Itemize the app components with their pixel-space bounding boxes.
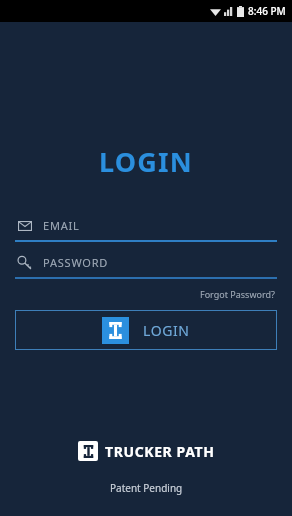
button[interactable]: PASSWORD <box>15 253 277 279</box>
button[interactable]: EMAIL <box>15 216 277 242</box>
staticText: Patent Pending <box>110 481 183 495</box>
staticText: LOGIN <box>0 143 292 180</box>
staticText: PASSWORD <box>43 255 109 270</box>
staticText: LOGIN <box>143 321 190 340</box>
staticText: EMAIL <box>43 218 80 233</box>
staticText: Forgot Password? <box>200 288 275 300</box>
button[interactable]: Forgot Password? <box>198 286 277 302</box>
button[interactable]: LOGIN <box>15 310 277 350</box>
staticText: TRUCKER PATH <box>105 442 215 461</box>
staticText: 8:46 PM <box>248 4 286 18</box>
